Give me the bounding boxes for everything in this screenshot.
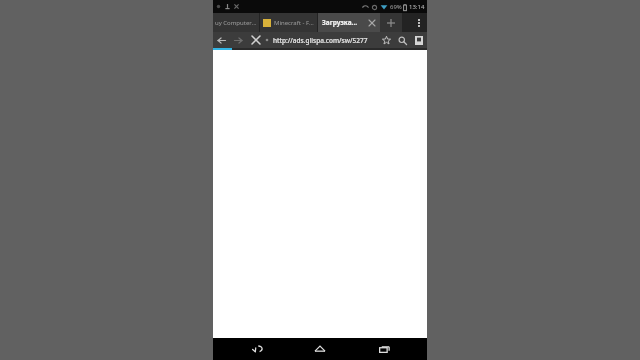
button[interactable]: Back — [213, 32, 230, 48]
staticText: 69% — [390, 3, 402, 11]
button[interactable]: More options — [411, 13, 427, 32]
button[interactable]: uy Computers... — [213, 13, 259, 32]
button[interactable]: Forward — [230, 32, 247, 48]
button[interactable]: Recent apps — [364, 338, 404, 360]
staticText: Minecraft - Fre... — [274, 19, 314, 27]
staticText: 13:14 — [409, 3, 425, 11]
button[interactable]: New tab — [380, 13, 402, 32]
staticText: Загрузка... — [322, 18, 366, 27]
button[interactable]: Back — [237, 338, 277, 360]
button[interactable]: Minecraft - Fre... — [260, 13, 317, 32]
staticText: uy Computers... — [215, 19, 259, 27]
button[interactable]: http://ads.glispa.com/sw/5277 — [264, 32, 378, 48]
button[interactable]: Загрузка... — [318, 13, 380, 32]
button[interactable]: Bookmarks — [411, 32, 427, 48]
button[interactable]: Stop loading — [247, 32, 264, 48]
button[interactable]: Search — [394, 32, 411, 48]
button[interactable]: Bookmark this page — [378, 32, 394, 48]
staticText: http://ads.glispa.com/sw/5277 — [273, 36, 368, 45]
button[interactable]: Home — [300, 338, 340, 360]
button[interactable]: Close tab — [366, 17, 378, 29]
